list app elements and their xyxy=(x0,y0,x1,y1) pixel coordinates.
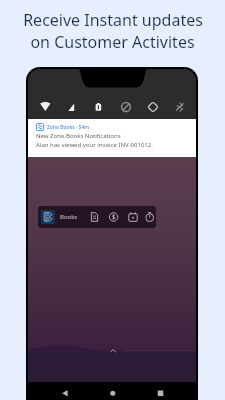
button[interactable]: Zoho Books · 54m xyxy=(28,119,196,157)
staticText: Receive Instant updates xyxy=(23,9,203,31)
staticText: Zoho Books · 54m xyxy=(47,124,90,131)
staticText: New Zoho Books Notifications xyxy=(36,132,121,140)
staticText: Alan has viewed your invoice INV-001012. xyxy=(36,141,153,149)
staticText: Books xyxy=(60,213,78,221)
button[interactable]: Books xyxy=(38,206,156,228)
staticText: on Customer Activites xyxy=(30,31,195,53)
